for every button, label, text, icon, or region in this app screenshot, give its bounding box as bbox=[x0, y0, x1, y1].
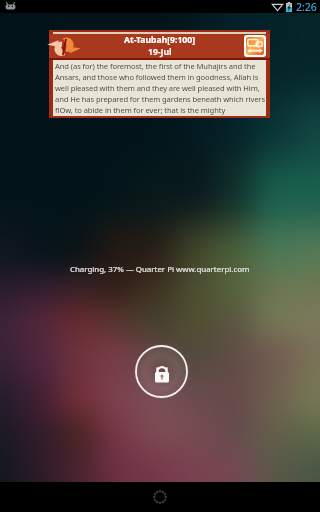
button[interactable]: At-Taubah[9:100] bbox=[49, 30, 270, 118]
staticText: 2:26 bbox=[296, 0, 317, 13]
staticText: 19-Jul bbox=[148, 46, 172, 58]
staticText: Charging, 37% — Quarter Pi www.quarterpi… bbox=[70, 264, 250, 275]
button[interactable]: Unlock bbox=[134, 344, 189, 399]
button[interactable]: Home bbox=[149, 486, 171, 508]
staticText: At-Taubah[9:100] bbox=[124, 34, 196, 46]
staticText: And (as for) the foremost, the first of … bbox=[55, 61, 265, 115]
